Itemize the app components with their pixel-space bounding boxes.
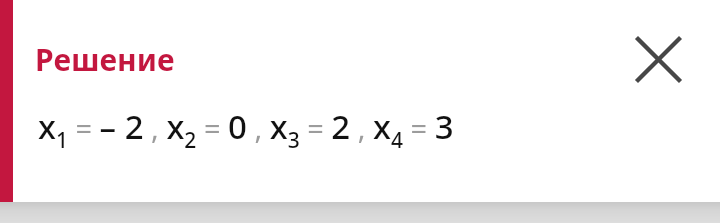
button[interactable]: Решение <box>35 39 175 80</box>
staticText: x1 = – 2 , x2 = 0 , x3 = 2 , x4 = 3 <box>38 104 454 154</box>
button[interactable]: Close <box>629 30 687 88</box>
staticText: Решение <box>35 39 175 80</box>
